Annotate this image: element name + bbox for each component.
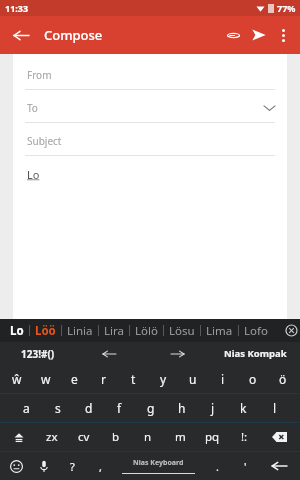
button[interactable]: l xyxy=(259,394,290,422)
button[interactable]: g xyxy=(135,394,166,422)
button[interactable]: ? xyxy=(58,452,86,480)
button[interactable]: Close suggestions xyxy=(284,323,299,338)
button[interactable]: Move cursor left xyxy=(75,342,143,365)
staticText: From xyxy=(27,68,52,82)
button[interactable]: zx xyxy=(36,423,68,451)
staticText: j xyxy=(211,400,215,416)
staticText: cv xyxy=(78,429,90,445)
button[interactable]: Emoji xyxy=(2,452,30,480)
staticText: a xyxy=(23,400,30,416)
button[interactable]: n xyxy=(132,423,164,451)
staticText: Lira xyxy=(104,323,124,339)
staticText: h xyxy=(178,400,186,416)
button[interactable]: Subject xyxy=(13,123,287,156)
button[interactable]: t xyxy=(118,365,148,393)
staticText: Lima xyxy=(206,323,233,339)
button[interactable]: pq xyxy=(196,423,228,451)
staticText: zx xyxy=(46,429,58,445)
button[interactable]: r xyxy=(89,365,118,393)
button[interactable]: ŵ xyxy=(2,365,31,393)
button[interactable]: Lo xyxy=(10,323,24,339)
staticText: ŵ xyxy=(12,371,22,387)
staticText: Subject xyxy=(27,134,62,148)
staticText: ? xyxy=(70,459,75,474)
button[interactable]: Lösu xyxy=(169,323,195,339)
staticText: e xyxy=(71,371,78,387)
staticText: Lösu xyxy=(169,323,195,339)
button[interactable]: k xyxy=(228,394,259,422)
staticText: Lo xyxy=(10,323,24,339)
button[interactable]: m xyxy=(164,423,196,451)
staticText: Löö xyxy=(35,323,56,339)
button[interactable]: Voice input xyxy=(30,452,58,480)
button[interactable]: Enter xyxy=(259,452,298,480)
staticText: n xyxy=(144,429,152,445)
staticText: b xyxy=(112,429,120,445)
button[interactable]: , xyxy=(86,452,114,480)
staticText: i xyxy=(221,371,225,387)
button[interactable]: Lölö xyxy=(135,323,158,339)
button[interactable]: Shift xyxy=(2,423,36,451)
button[interactable]: e xyxy=(60,365,89,393)
staticText: . xyxy=(216,459,219,474)
button[interactable]: f xyxy=(104,394,135,422)
button[interactable]: Linia xyxy=(67,323,93,339)
button[interactable]: Lofo xyxy=(244,323,268,339)
staticText: k xyxy=(240,400,247,416)
staticText: Linia xyxy=(67,323,93,339)
staticText: Lofo xyxy=(244,323,268,339)
button[interactable]: y xyxy=(148,365,178,393)
staticText: m xyxy=(175,429,186,445)
button[interactable]: j xyxy=(197,394,228,422)
button[interactable]: i xyxy=(208,365,238,393)
staticText: 77% xyxy=(277,2,296,14)
button[interactable]: 123!#() xyxy=(0,342,75,365)
button[interactable]: h xyxy=(166,394,197,422)
staticText: ' xyxy=(244,459,247,474)
staticText: f xyxy=(117,400,122,416)
button[interactable]: Backspace xyxy=(260,423,298,451)
button[interactable]: To xyxy=(13,90,287,123)
button[interactable]: Back xyxy=(6,20,36,50)
staticText: 123!#() xyxy=(21,347,55,361)
button[interactable]: Lira xyxy=(104,323,124,339)
staticText: u xyxy=(189,371,197,387)
button[interactable]: w xyxy=(31,365,60,393)
staticText: o xyxy=(249,371,257,387)
staticText: 11:33 xyxy=(5,2,29,14)
button[interactable]: More options xyxy=(272,24,294,46)
staticText: ö xyxy=(279,371,287,387)
button[interactable]: From xyxy=(13,54,287,90)
button[interactable]: ö xyxy=(268,365,298,393)
staticText: Nias Kompak xyxy=(224,347,287,360)
staticText: y xyxy=(160,371,167,387)
button[interactable]: Nias Keyboard xyxy=(114,452,203,480)
button[interactable]: Lo xyxy=(27,167,287,182)
staticText: pq xyxy=(205,429,220,445)
staticText: Compose xyxy=(44,26,103,44)
button[interactable]: Nias Kompak xyxy=(211,342,300,365)
button[interactable]: ' xyxy=(231,452,259,480)
button[interactable]: . xyxy=(203,452,231,480)
button[interactable]: d xyxy=(73,394,104,422)
button[interactable]: Lima xyxy=(206,323,233,339)
staticText: Nias Keyboard xyxy=(133,458,184,468)
button[interactable]: !: xyxy=(228,423,260,451)
staticText: g xyxy=(147,400,155,416)
button[interactable]: u xyxy=(178,365,208,393)
staticText: Lo xyxy=(27,167,40,182)
button[interactable]: Attach file xyxy=(220,22,246,48)
button[interactable]: Send xyxy=(246,22,272,48)
staticText: d xyxy=(85,400,93,416)
button[interactable]: a xyxy=(10,394,42,422)
button[interactable]: Löö xyxy=(35,323,56,339)
button[interactable]: s xyxy=(42,394,73,422)
button[interactable]: Move cursor right xyxy=(143,342,211,365)
button[interactable]: b xyxy=(100,423,132,451)
staticText: Lölö xyxy=(135,323,158,339)
staticText: w xyxy=(41,371,51,387)
staticText: r xyxy=(101,371,106,387)
button[interactable]: o xyxy=(238,365,268,393)
button[interactable]: cv xyxy=(68,423,100,451)
staticText: , xyxy=(99,459,102,474)
